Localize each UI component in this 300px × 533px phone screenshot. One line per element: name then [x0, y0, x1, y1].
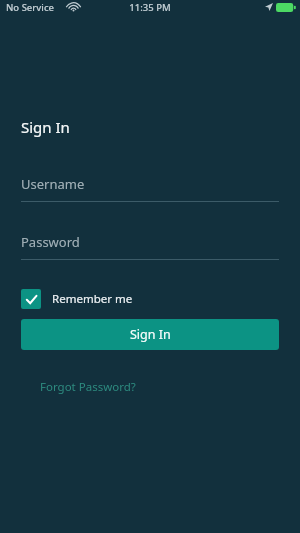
staticText: Remember me — [52, 291, 133, 307]
staticText: Password — [21, 233, 80, 251]
staticText: Forgot Password? — [40, 379, 136, 395]
staticText: Sign In — [130, 326, 171, 343]
staticText: No Service — [6, 1, 55, 14]
staticText: Sign In — [21, 117, 70, 137]
button[interactable]: Sign In — [21, 319, 279, 350]
button[interactable]: Remember me — [21, 289, 133, 309]
button[interactable]: Username — [21, 175, 279, 202]
button[interactable]: Forgot Password? — [40, 379, 136, 395]
staticText: 11:35 PM — [129, 1, 171, 14]
staticText: Username — [21, 175, 85, 193]
button[interactable]: Password — [21, 233, 279, 260]
